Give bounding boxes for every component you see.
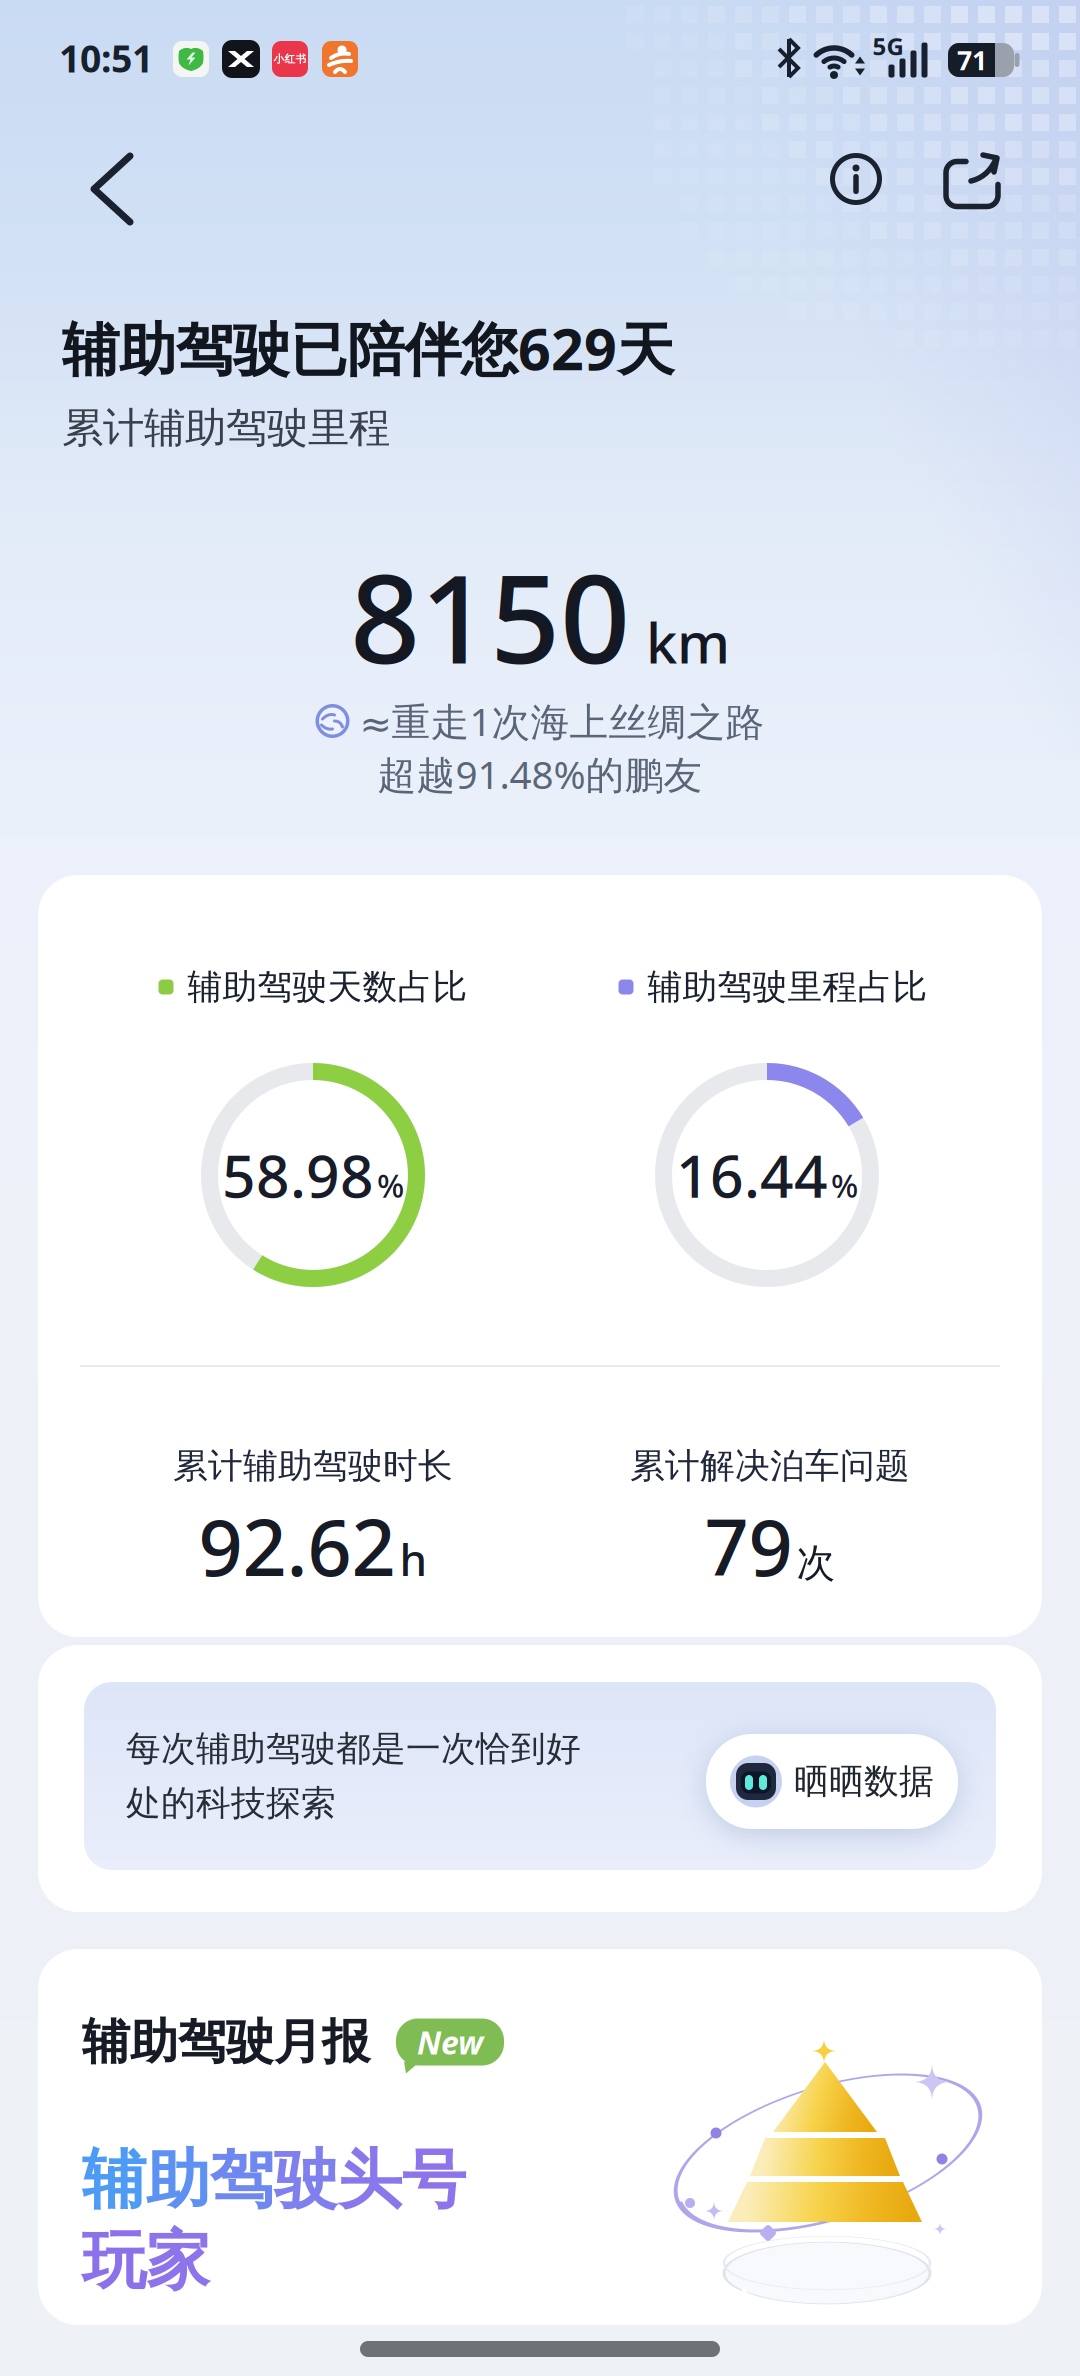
staticText: 辅助驾驶月报 [82,2012,370,2071]
button[interactable]: Back [67,139,157,239]
staticText: % [377,1164,404,1207]
staticText: 累计解决泊车问题 [630,1445,910,1487]
staticText: 小红书 [273,52,306,65]
staticText: 辅助驾驶已陪伴您629天 [62,310,674,386]
staticText: 10:51 [59,33,153,83]
staticText: 号 [402,2141,466,2219]
staticText: 58.98 [222,1136,374,1214]
staticText: 助 [146,2141,210,2219]
staticText: 16.44 [676,1136,828,1214]
staticText: km [646,605,730,679]
staticText: 超越91.48%的鹏友 [377,748,702,800]
button[interactable]: Share [934,140,1014,220]
staticText: 79 [704,1495,792,1597]
staticText: h [399,1530,427,1588]
staticText: 92.62 [198,1495,395,1597]
staticText: 次 [796,1539,835,1587]
button[interactable]: 晒晒数据 [706,1734,958,1829]
staticText: 5G [872,30,903,62]
button[interactable]: 辅助驾驶月报 [38,1949,1042,2325]
staticText: 8150 [350,535,630,697]
staticText: 晒晒数据 [794,1760,934,1803]
staticText: 家 [146,2222,210,2300]
staticText: 每次辅助驾驶都是一次恰到好 [126,1727,581,1770]
staticText: New [417,2021,483,2063]
staticText: 处的科技探索 [126,1782,336,1825]
button[interactable]: Info [816,139,896,219]
staticText: ≈重走1次海上丝绸之路 [359,695,764,747]
staticText: 辅助驾驶里程占比 [647,966,927,1008]
staticText: 累计辅助驾驶时长 [173,1445,453,1487]
staticText: 玩 [82,2222,146,2300]
staticText: 驶 [274,2141,338,2219]
staticText: 辅 [82,2141,146,2219]
staticText: 累计辅助驾驶里程 [62,403,390,453]
staticText: % [831,1164,858,1207]
staticText: 辅助驾驶天数占比 [187,966,467,1008]
staticText: 驾 [210,2141,274,2219]
staticText: 71 [957,42,987,78]
staticText: 头 [338,2141,402,2219]
